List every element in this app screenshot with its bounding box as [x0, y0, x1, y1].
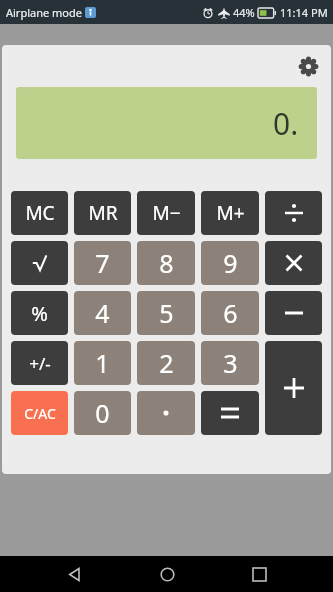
staticText: 7: [95, 246, 110, 280]
staticText: 5: [159, 296, 174, 330]
staticText: 2: [159, 346, 174, 380]
button[interactable]: C/AC: [11, 391, 68, 435]
button[interactable]: [11, 241, 68, 285]
staticText: 0.: [273, 103, 299, 144]
button[interactable]: 6: [201, 291, 259, 335]
staticText: Airplane mode: [6, 5, 82, 20]
staticText: 44%: [233, 5, 255, 20]
button[interactable]: 3: [201, 341, 259, 385]
staticText: 0: [95, 396, 110, 430]
button[interactable]: 9: [201, 241, 259, 285]
button[interactable]: [265, 291, 322, 335]
staticText: M+: [216, 200, 245, 226]
button[interactable]: 4: [74, 291, 131, 335]
button[interactable]: MR: [74, 191, 131, 235]
staticText: MC: [25, 200, 55, 226]
button[interactable]: Back: [56, 556, 92, 592]
button[interactable]: MC: [11, 191, 68, 235]
staticText: 1: [95, 346, 110, 380]
button[interactable]: M−: [137, 191, 195, 235]
staticText: 8: [159, 246, 174, 280]
button[interactable]: M+: [201, 191, 259, 235]
button[interactable]: 7: [74, 241, 131, 285]
button[interactable]: [137, 391, 195, 435]
button[interactable]: [201, 391, 259, 435]
button[interactable]: 1: [74, 341, 131, 385]
button[interactable]: %: [11, 291, 68, 335]
staticText: 9: [223, 246, 238, 280]
button[interactable]: Settings: [295, 53, 321, 79]
staticText: 3: [223, 346, 238, 380]
button[interactable]: Home: [149, 556, 185, 592]
staticText: MR: [88, 200, 118, 226]
staticText: 4: [95, 296, 110, 330]
button[interactable]: Recent apps: [241, 556, 277, 592]
button[interactable]: +/-: [11, 341, 68, 385]
button[interactable]: [265, 241, 322, 285]
staticText: +/-: [29, 352, 51, 375]
button[interactable]: 2: [137, 341, 195, 385]
button[interactable]: [265, 191, 322, 235]
button[interactable]: 8: [137, 241, 195, 285]
staticText: 6: [223, 296, 238, 330]
staticText: M−: [152, 200, 181, 226]
button[interactable]: [265, 341, 322, 435]
staticText: 11:14 PM: [280, 5, 328, 20]
button[interactable]: 5: [137, 291, 195, 335]
staticText: %: [31, 300, 48, 327]
staticText: C/AC: [24, 404, 56, 423]
button[interactable]: 0: [74, 391, 131, 435]
